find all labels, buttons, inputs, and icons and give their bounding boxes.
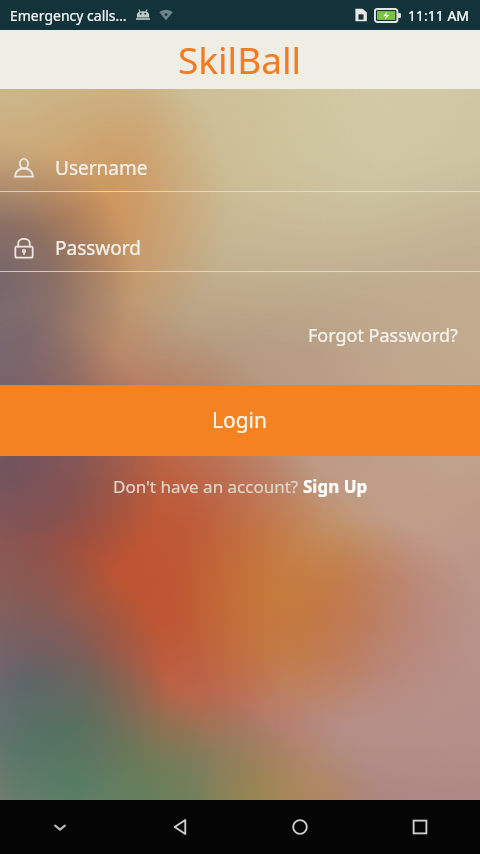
staticText: 11:11 AM [408,6,470,25]
button[interactable]: Don't have an account? [103,469,378,504]
button[interactable]: Hide keyboard [0,800,120,854]
staticText: Don't have an account? [113,475,303,498]
button[interactable]: Password [0,225,480,271]
button[interactable]: Login [0,385,480,456]
button[interactable]: Forgot Password? [286,319,480,352]
staticText: Password [55,235,141,261]
staticText: Login [212,406,268,435]
staticText: Emergency calls… [10,6,127,25]
staticText: Sign Up [303,475,368,498]
button[interactable]: Home [240,800,360,854]
button[interactable]: Username [0,145,480,191]
button[interactable]: Back [120,800,240,854]
staticText: Username [55,155,148,181]
staticText: SkilBall [178,34,302,84]
staticText: Forgot Password? [308,323,458,348]
button[interactable]: Recents [360,800,480,854]
